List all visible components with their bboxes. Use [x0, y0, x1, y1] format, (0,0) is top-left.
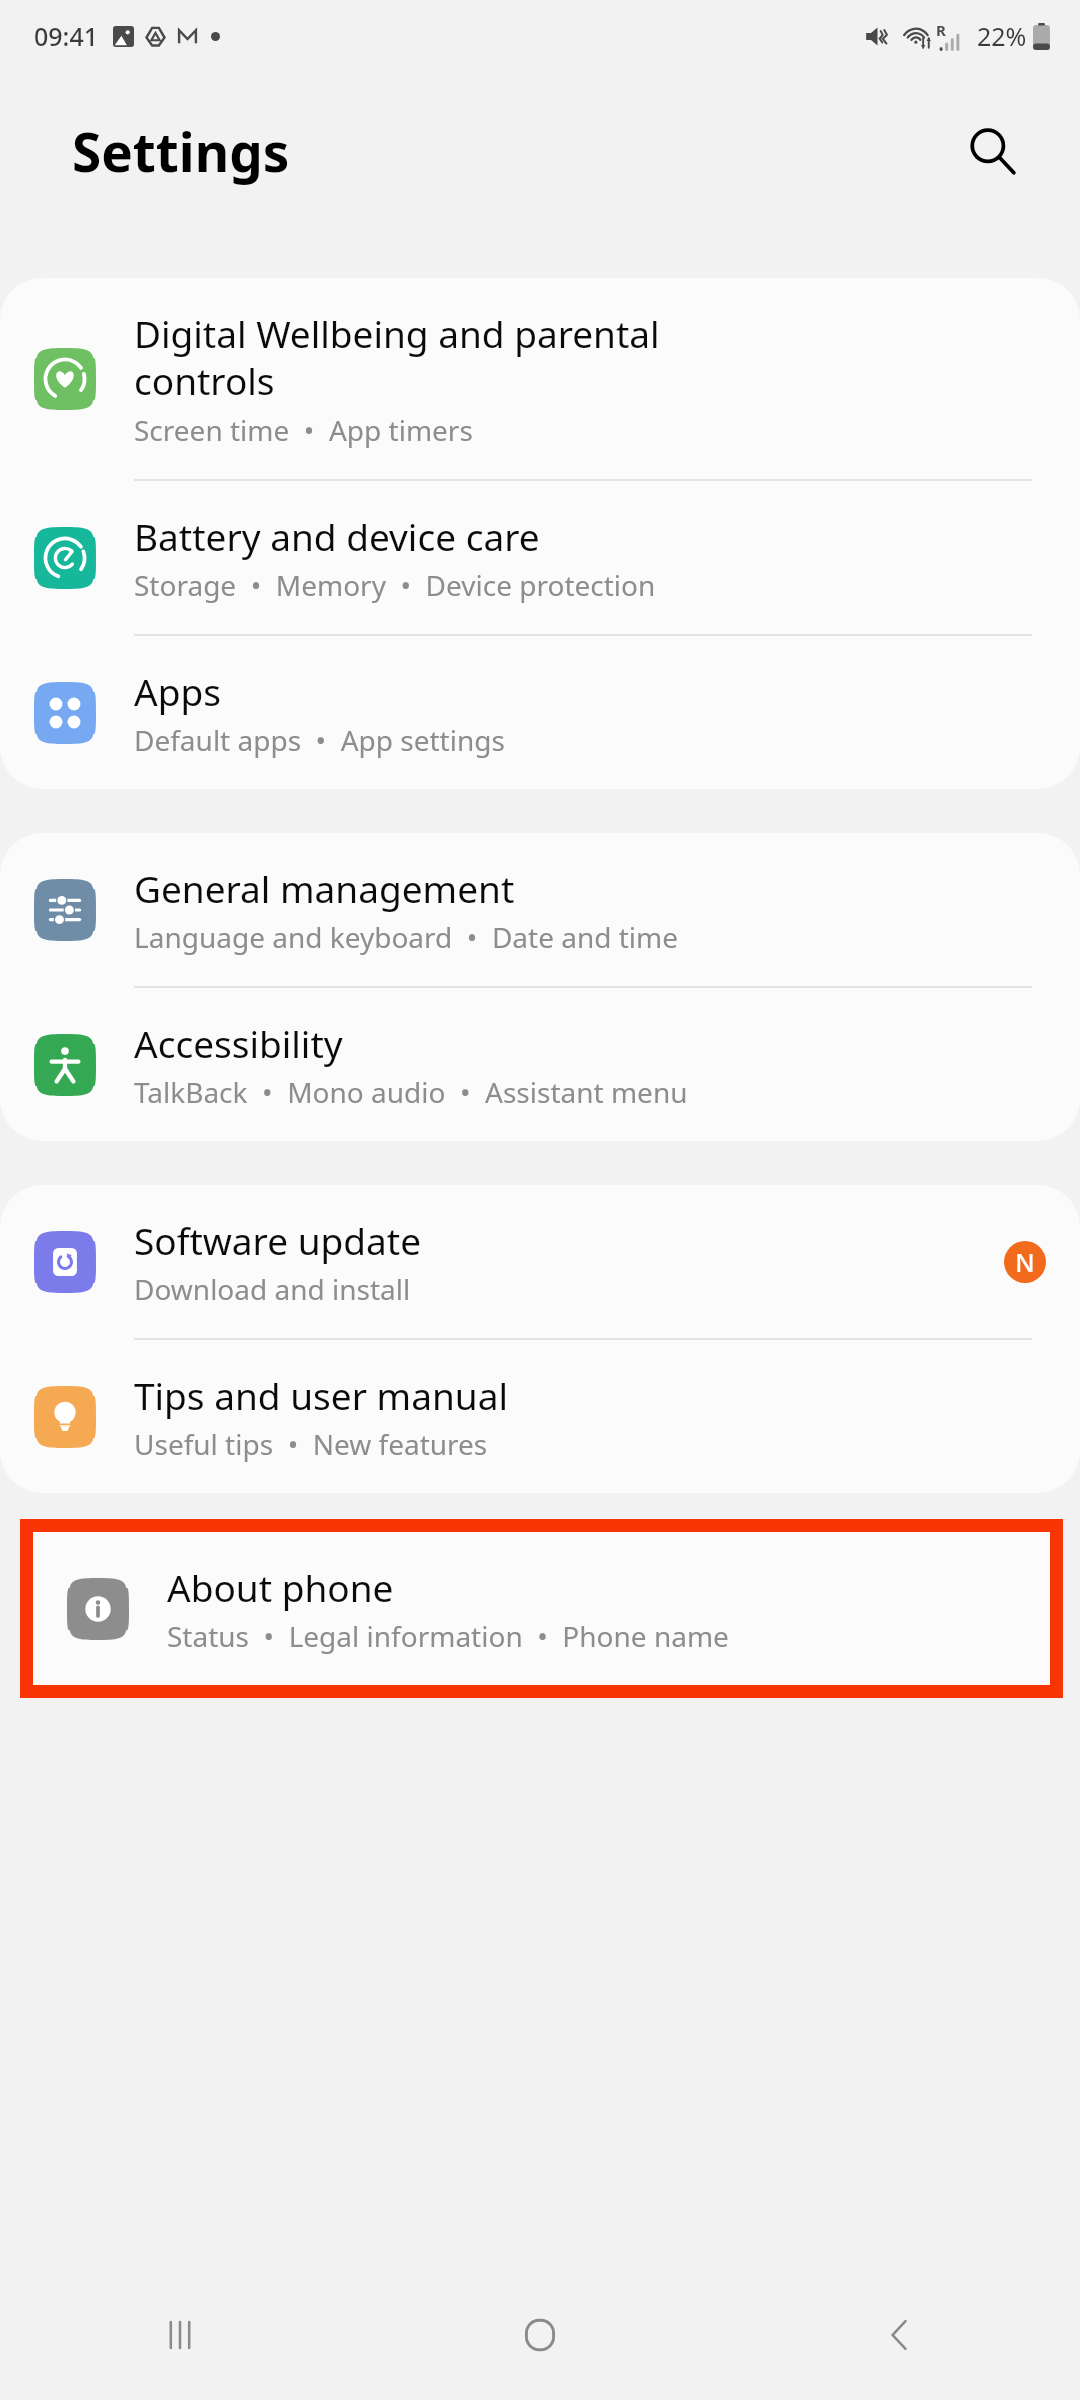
staticText: 22%: [977, 19, 1027, 53]
staticText: R: [936, 20, 946, 40]
staticText: N: [1015, 1245, 1035, 1279]
staticText: General management: [134, 863, 515, 913]
staticText: Screen time • App timers: [134, 411, 473, 449]
staticText: TalkBack • Mono audio • Assistant menu: [134, 1073, 688, 1111]
staticText: 09:41: [34, 19, 99, 53]
button[interactable]: Search: [956, 115, 1028, 187]
staticText: Settings: [72, 115, 290, 187]
button[interactable]: About phone: [33, 1532, 1050, 1685]
staticText: Software update: [134, 1215, 422, 1265]
button[interactable]: Back: [720, 2270, 1080, 2400]
staticText: Download and install: [134, 1270, 411, 1308]
staticText: Accessibility: [134, 1018, 343, 1068]
staticText: Apps: [134, 666, 221, 716]
staticText: Digital Wellbeing and parental controls: [134, 308, 660, 406]
staticText: Status • Legal information • Phone name: [167, 1617, 729, 1655]
button[interactable]: Software update: [0, 1185, 1080, 1340]
button[interactable]: Digital Wellbeing and parental controls: [0, 278, 1080, 481]
button[interactable]: Battery and device care: [0, 481, 1080, 636]
button[interactable]: Apps: [0, 636, 1080, 789]
button[interactable]: Recent apps: [0, 2270, 360, 2400]
button[interactable]: Accessibility: [0, 988, 1080, 1141]
staticText: Tips and user manual: [134, 1370, 508, 1420]
staticText: Useful tips • New features: [134, 1425, 488, 1463]
staticText: Language and keyboard • Date and time: [134, 918, 679, 956]
staticText: About phone: [167, 1562, 394, 1612]
button[interactable]: Tips and user manual: [0, 1340, 1080, 1493]
button[interactable]: Home: [360, 2270, 720, 2400]
staticText: Battery and device care: [134, 511, 540, 561]
button[interactable]: General management: [0, 833, 1080, 988]
staticText: Storage • Memory • Device protection: [134, 566, 656, 604]
staticText: Default apps • App settings: [134, 721, 505, 759]
